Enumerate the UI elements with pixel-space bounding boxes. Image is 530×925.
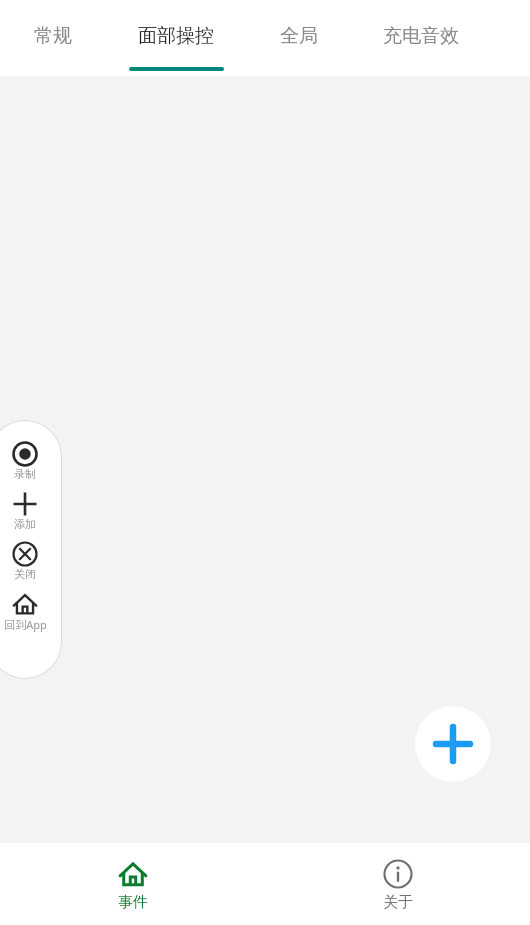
staticText: 全局: [280, 24, 318, 48]
staticText: 事件: [118, 893, 148, 912]
staticText: 常规: [34, 24, 72, 48]
button[interactable]: Add: [415, 706, 491, 782]
staticText: 回到App: [4, 617, 47, 632]
button[interactable]: 关闭: [0, 541, 56, 581]
button[interactable]: 添加: [0, 491, 56, 531]
staticText: 面部操控: [138, 24, 214, 48]
staticText: 关闭: [14, 567, 36, 581]
button[interactable]: 录制: [0, 420, 62, 679]
button[interactable]: 常规: [0, 0, 105, 76]
staticText: 录制: [14, 467, 36, 481]
button[interactable]: 回到App: [0, 591, 56, 632]
button[interactable]: 录制: [0, 441, 56, 481]
button[interactable]: 充电音效: [351, 0, 491, 76]
staticText: 添加: [14, 517, 36, 531]
button[interactable]: 全局: [247, 0, 351, 76]
button[interactable]: 关于: [265, 843, 530, 925]
button[interactable]: 事件: [0, 843, 265, 925]
staticText: 关于: [383, 893, 413, 912]
button[interactable]: 面部操控: [105, 0, 247, 76]
staticText: 充电音效: [383, 24, 459, 48]
